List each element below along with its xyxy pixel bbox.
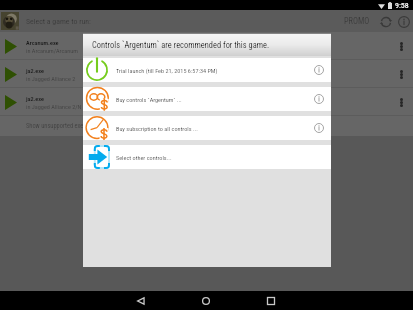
staticText: Select a game to run: — [26, 17, 91, 26]
button[interactable]: Select other controls... — [83, 145, 331, 169]
button[interactable]: Back — [128, 291, 154, 310]
staticText: in Jagged Alliance 2 — [26, 75, 76, 82]
button[interactable]: Info — [309, 60, 329, 80]
button[interactable]: ja2.exe — [0, 60, 413, 88]
button[interactable]: Arcanum.exe — [0, 32, 413, 60]
button[interactable]: Recents — [258, 291, 284, 310]
button[interactable]: About — [395, 13, 412, 30]
staticText: Controls `Argentum` are recommended for … — [92, 40, 270, 50]
staticText: Show unsupported exe — [26, 122, 84, 130]
button[interactable]: Refresh — [377, 13, 394, 30]
button[interactable]: Buy subscription to all controls ... — [83, 116, 331, 140]
button[interactable]: Buy controls `Argentum` ... — [83, 87, 331, 111]
button[interactable]: Trial launch (till Feb 21, 2015 6:57:34 … — [83, 58, 331, 82]
button[interactable]: PROMO — [342, 16, 372, 26]
button[interactable]: Info — [309, 118, 329, 138]
button[interactable]: Home — [193, 291, 219, 310]
button[interactable]: Info — [309, 89, 329, 109]
button[interactable]: ja2.exe — [0, 88, 413, 116]
button[interactable]: More options — [392, 65, 410, 83]
staticText: Buy controls `Argentum` ... — [116, 96, 182, 103]
staticText: in Arcanum/Arcanum — [26, 47, 78, 54]
button[interactable]: More options — [392, 37, 410, 55]
staticText: Select other controls... — [116, 154, 172, 161]
staticText: Arcanum.exe — [26, 39, 59, 46]
staticText: ja2.exe — [26, 95, 45, 102]
button[interactable]: Show unsupported exe — [0, 116, 413, 136]
staticText: Buy subscription to all controls ... — [116, 125, 198, 132]
staticText: PROMO — [344, 16, 370, 26]
button[interactable]: App icon — [1, 12, 19, 30]
staticText: ja2.exe — [26, 67, 45, 74]
staticText: 9:58 — [395, 1, 409, 10]
staticText: Trial launch (till Feb 21, 2015 6:57:34 … — [116, 67, 218, 74]
staticText: in Jagged Alliance 2/N — [26, 103, 82, 110]
button[interactable]: More options — [392, 93, 410, 111]
